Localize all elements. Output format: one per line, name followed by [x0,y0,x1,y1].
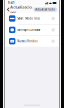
staticText: Actualizaciones [10,4,32,15]
button[interactable]: Nuevos Fondos [5,36,59,47]
staticText: Safari: Modo Foco [17,17,40,20]
staticText: 9:41 [8,1,15,5]
button[interactable]: Safari: Modo Foco [5,13,59,24]
staticText: Mensajes Destacar [17,28,40,32]
button[interactable]: Actualizaciones [7,6,32,13]
button[interactable]: Mensajes Destacar [5,24,59,35]
staticText: Actualizar todo [35,8,55,11]
staticText: Nuevos Fondos [17,39,37,43]
button[interactable]: Actualizar todo [33,7,57,12]
